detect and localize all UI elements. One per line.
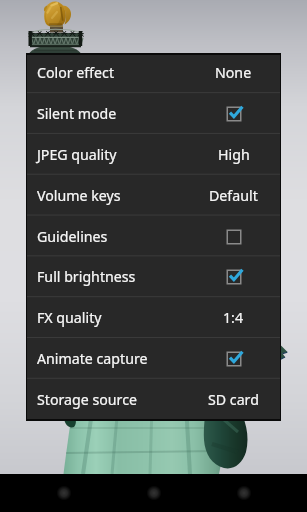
button[interactable]: Recent apps — [224, 474, 264, 512]
button[interactable]: Animate capture — [27, 338, 280, 379]
staticText: Volume keys — [37, 186, 121, 205]
staticText: Storage source — [37, 390, 137, 409]
staticText: High — [218, 145, 250, 164]
staticText: None — [215, 63, 252, 82]
staticText: Full brightness — [37, 267, 136, 286]
button[interactable]: Guidelines — [27, 216, 280, 257]
button[interactable]: Home — [134, 474, 174, 512]
button[interactable]: Full brightness — [27, 256, 280, 297]
staticText: Default — [209, 186, 258, 205]
staticText: SD card — [208, 390, 259, 409]
button[interactable]: Volume keys — [27, 175, 280, 216]
staticText: JPEG quality — [37, 145, 117, 164]
button[interactable]: Silent mode — [27, 93, 280, 134]
button[interactable]: Color effect — [27, 55, 280, 93]
staticText: FX quality — [37, 308, 102, 327]
button[interactable]: FX quality — [27, 297, 280, 338]
staticText: Guidelines — [37, 227, 108, 246]
staticText: 1:4 — [223, 308, 244, 327]
button[interactable]: Storage source — [27, 379, 280, 419]
staticText: Color effect — [37, 63, 115, 82]
staticText: Silent mode — [37, 104, 117, 123]
button[interactable]: JPEG quality — [27, 134, 280, 175]
staticText: Animate capture — [37, 349, 148, 368]
button[interactable]: Back — [44, 474, 84, 512]
